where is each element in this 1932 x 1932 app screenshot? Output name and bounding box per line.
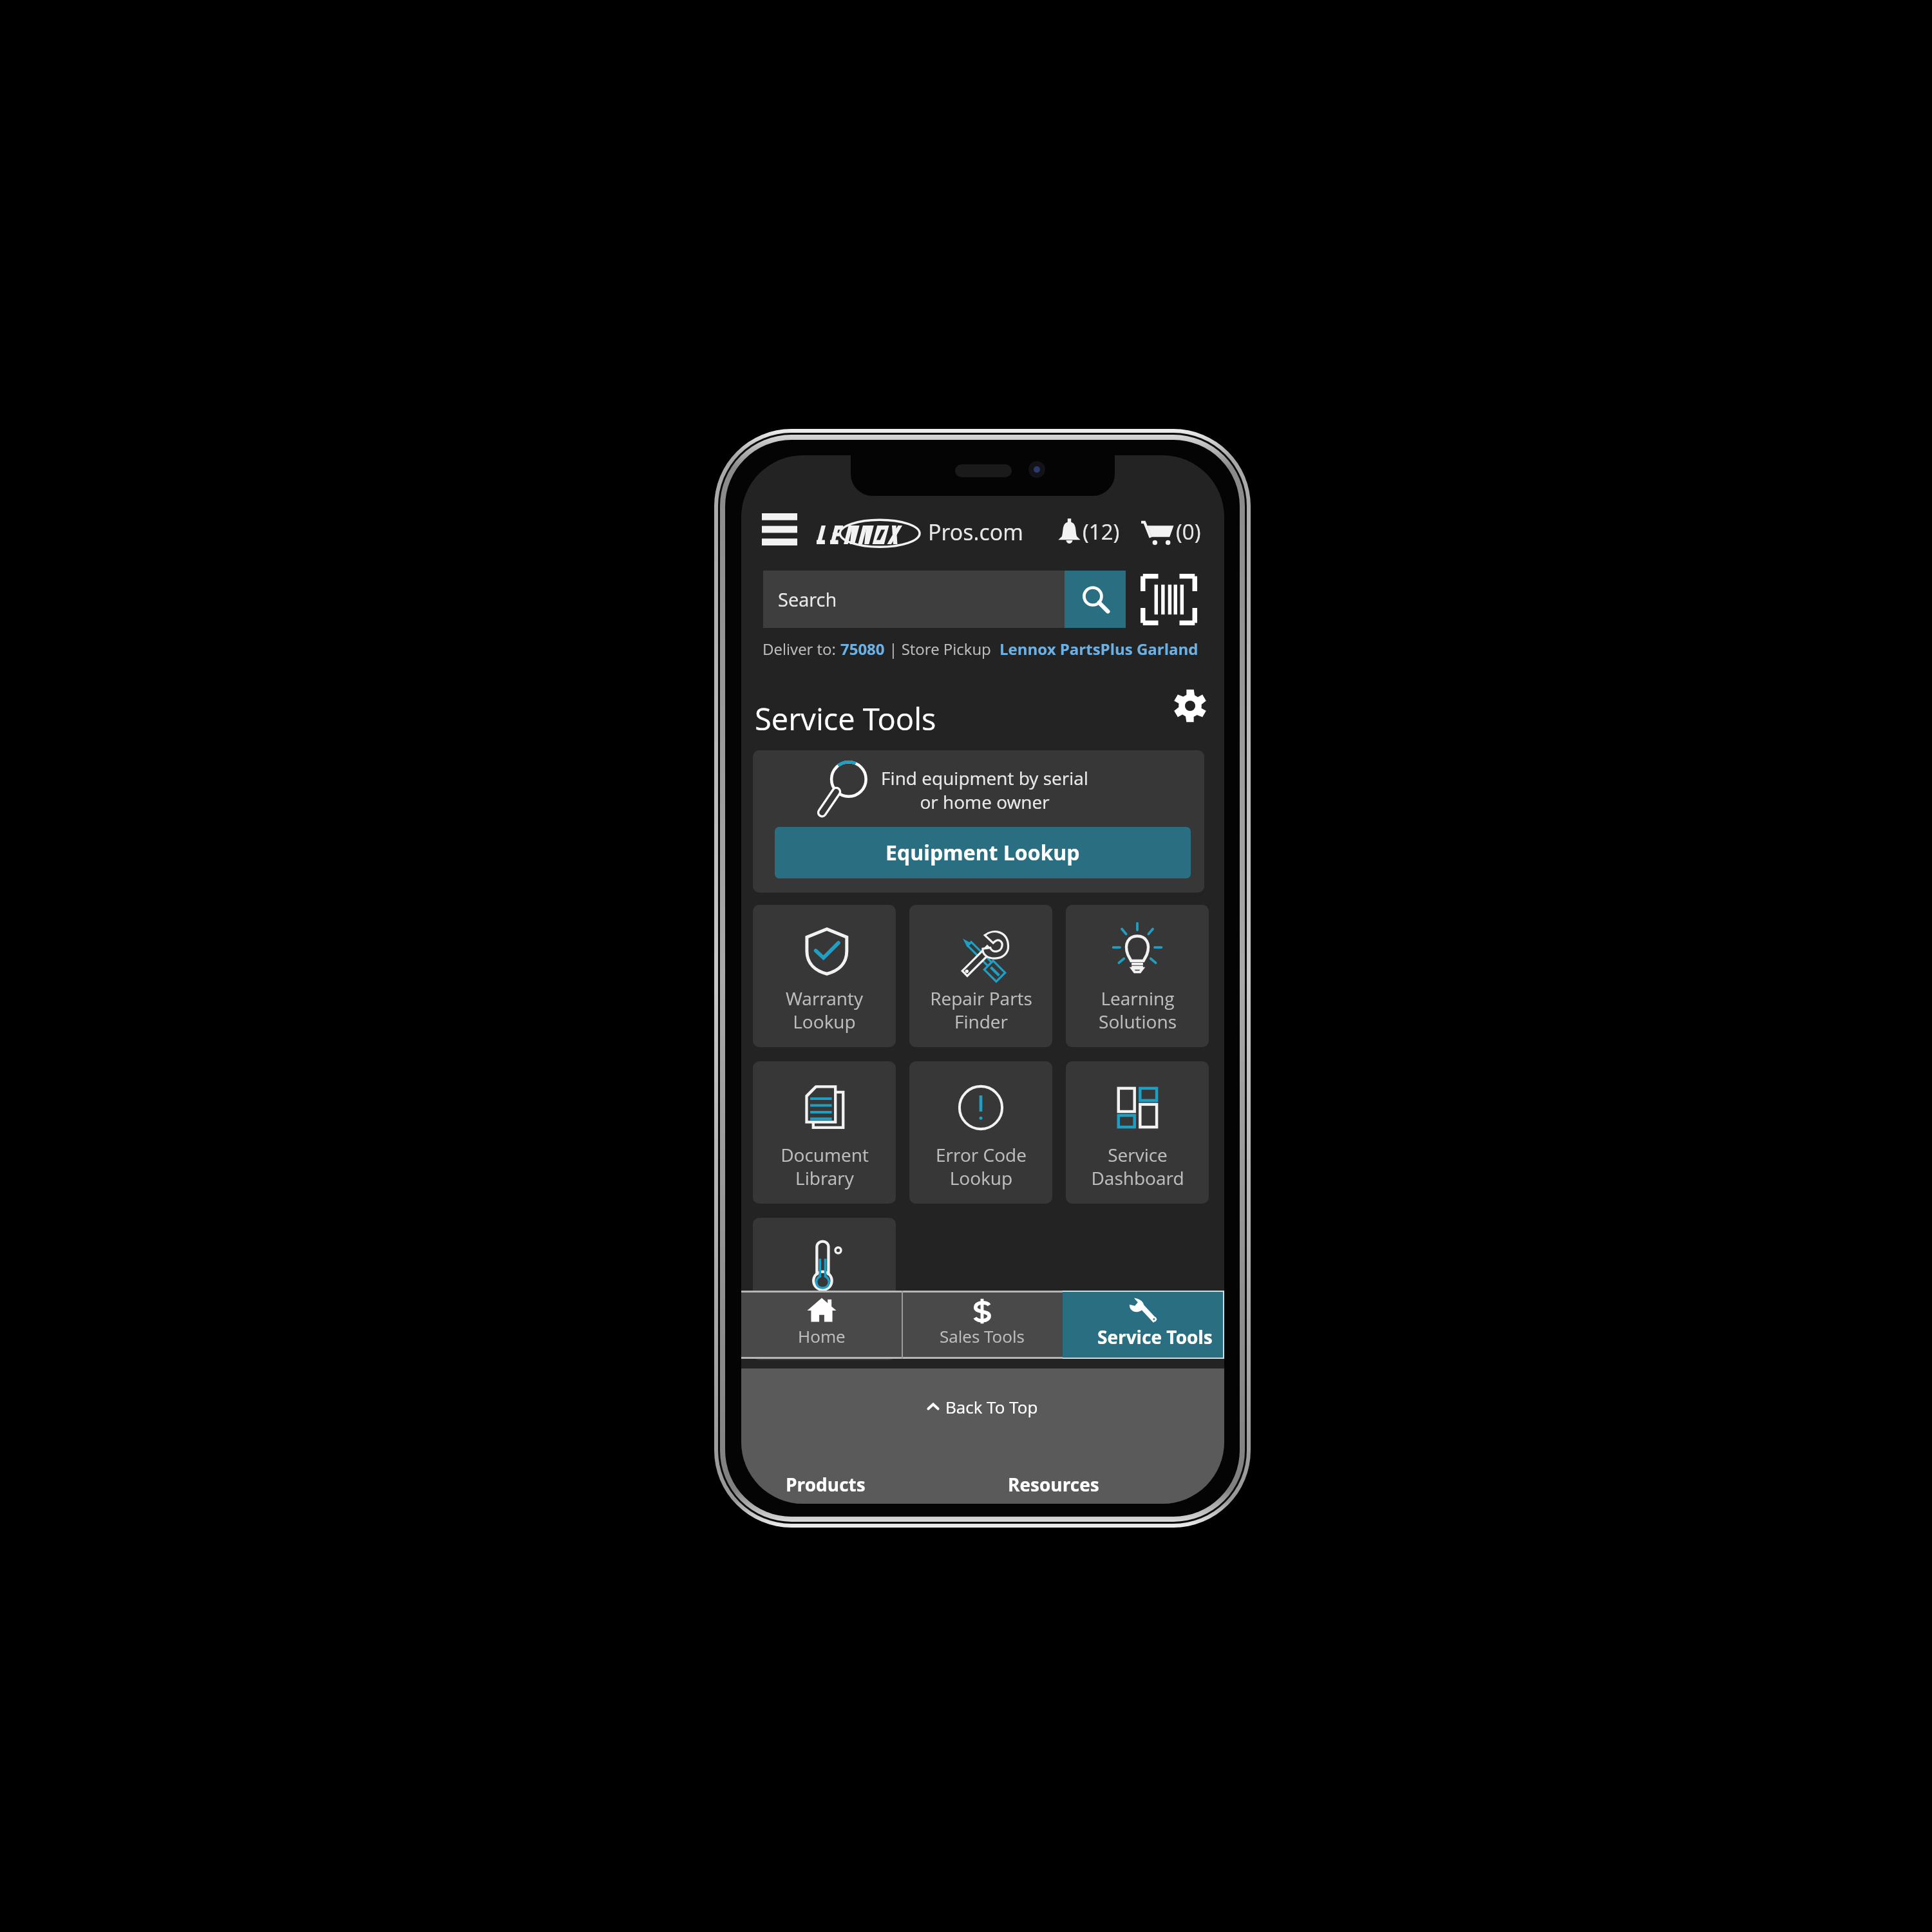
staticText: Deliver to: <box>762 638 840 659</box>
button[interactable]: Notifications <box>1057 513 1120 549</box>
button[interactable]: Resources <box>995 1465 1108 1504</box>
button[interactable]: Error Code Lookup <box>909 1061 1052 1204</box>
staticText: Lennox PartsPlus Garland <box>999 638 1198 659</box>
staticText: Resources <box>1008 1472 1099 1497</box>
button[interactable]: Warranty Lookup <box>753 905 896 1047</box>
staticText: (0) <box>1176 517 1201 546</box>
button[interactable]: Settings <box>1164 681 1216 731</box>
staticText: Home <box>798 1325 846 1347</box>
button[interactable]: Sales Tools <box>902 1291 1063 1359</box>
staticText: Warranty Lookup <box>786 986 863 1034</box>
staticText: Pros.com <box>928 517 1023 547</box>
button[interactable]: Equipment Lookup <box>775 827 1191 878</box>
button[interactable]: Home <box>741 1291 902 1359</box>
button[interactable]: Service Dashboard <box>1066 1061 1209 1204</box>
staticText: Error Code Lookup <box>936 1142 1027 1190</box>
staticText: Sales Tools <box>940 1325 1025 1347</box>
staticText: Service Tools <box>1097 1325 1213 1349</box>
button[interactable]: Find equipment by serial or home owner <box>753 750 1204 893</box>
button[interactable]: Search <box>763 571 1126 628</box>
button[interactable]: Thermostat Help <box>753 1218 896 1360</box>
button[interactable]: Learning Solutions <box>1066 905 1209 1047</box>
button[interactable]: Products <box>773 1465 877 1504</box>
staticText: Find equipment by serial or home owner <box>881 766 1088 814</box>
button[interactable]: Scan barcode <box>1137 569 1200 629</box>
staticText: Service Tools <box>755 698 936 739</box>
button[interactable]: Back To Top <box>741 1387 1224 1426</box>
staticText: | Store Pickup <box>885 638 999 659</box>
staticText: Learning Solutions <box>1099 986 1177 1034</box>
button[interactable]: Service Tools <box>1063 1291 1224 1359</box>
staticText: Search <box>778 587 837 612</box>
staticText: Equipment Lookup <box>885 838 1080 867</box>
staticText: Thermostat Help <box>775 1299 873 1347</box>
staticText: (12) <box>1083 517 1120 546</box>
staticText: Products <box>786 1472 866 1497</box>
staticText: Repair Parts Finder <box>930 986 1032 1034</box>
staticText: 75080 <box>840 638 885 659</box>
staticText: Document Library <box>781 1142 869 1190</box>
staticText: Back To Top <box>945 1396 1038 1418</box>
button[interactable]: Repair Parts Finder <box>909 905 1052 1047</box>
button[interactable]: Deliver to: <box>762 636 1198 661</box>
staticText: Service Dashboard <box>1091 1142 1184 1190</box>
button[interactable]: Shopping cart <box>1141 513 1201 549</box>
button[interactable]: LennoxPros.com home <box>813 508 1028 552</box>
button[interactable]: Document Library <box>753 1061 896 1204</box>
button[interactable]: Menu <box>753 504 806 554</box>
